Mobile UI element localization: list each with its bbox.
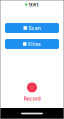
button[interactable]: Record (27, 82, 37, 92)
staticText: Scan (28, 24, 40, 32)
button[interactable]: Files (5, 39, 59, 49)
button[interactable]: Scan (5, 23, 59, 33)
staticText: 9:41 (29, 1, 39, 8)
staticText: Files (28, 40, 41, 48)
staticText: Record (23, 95, 40, 102)
